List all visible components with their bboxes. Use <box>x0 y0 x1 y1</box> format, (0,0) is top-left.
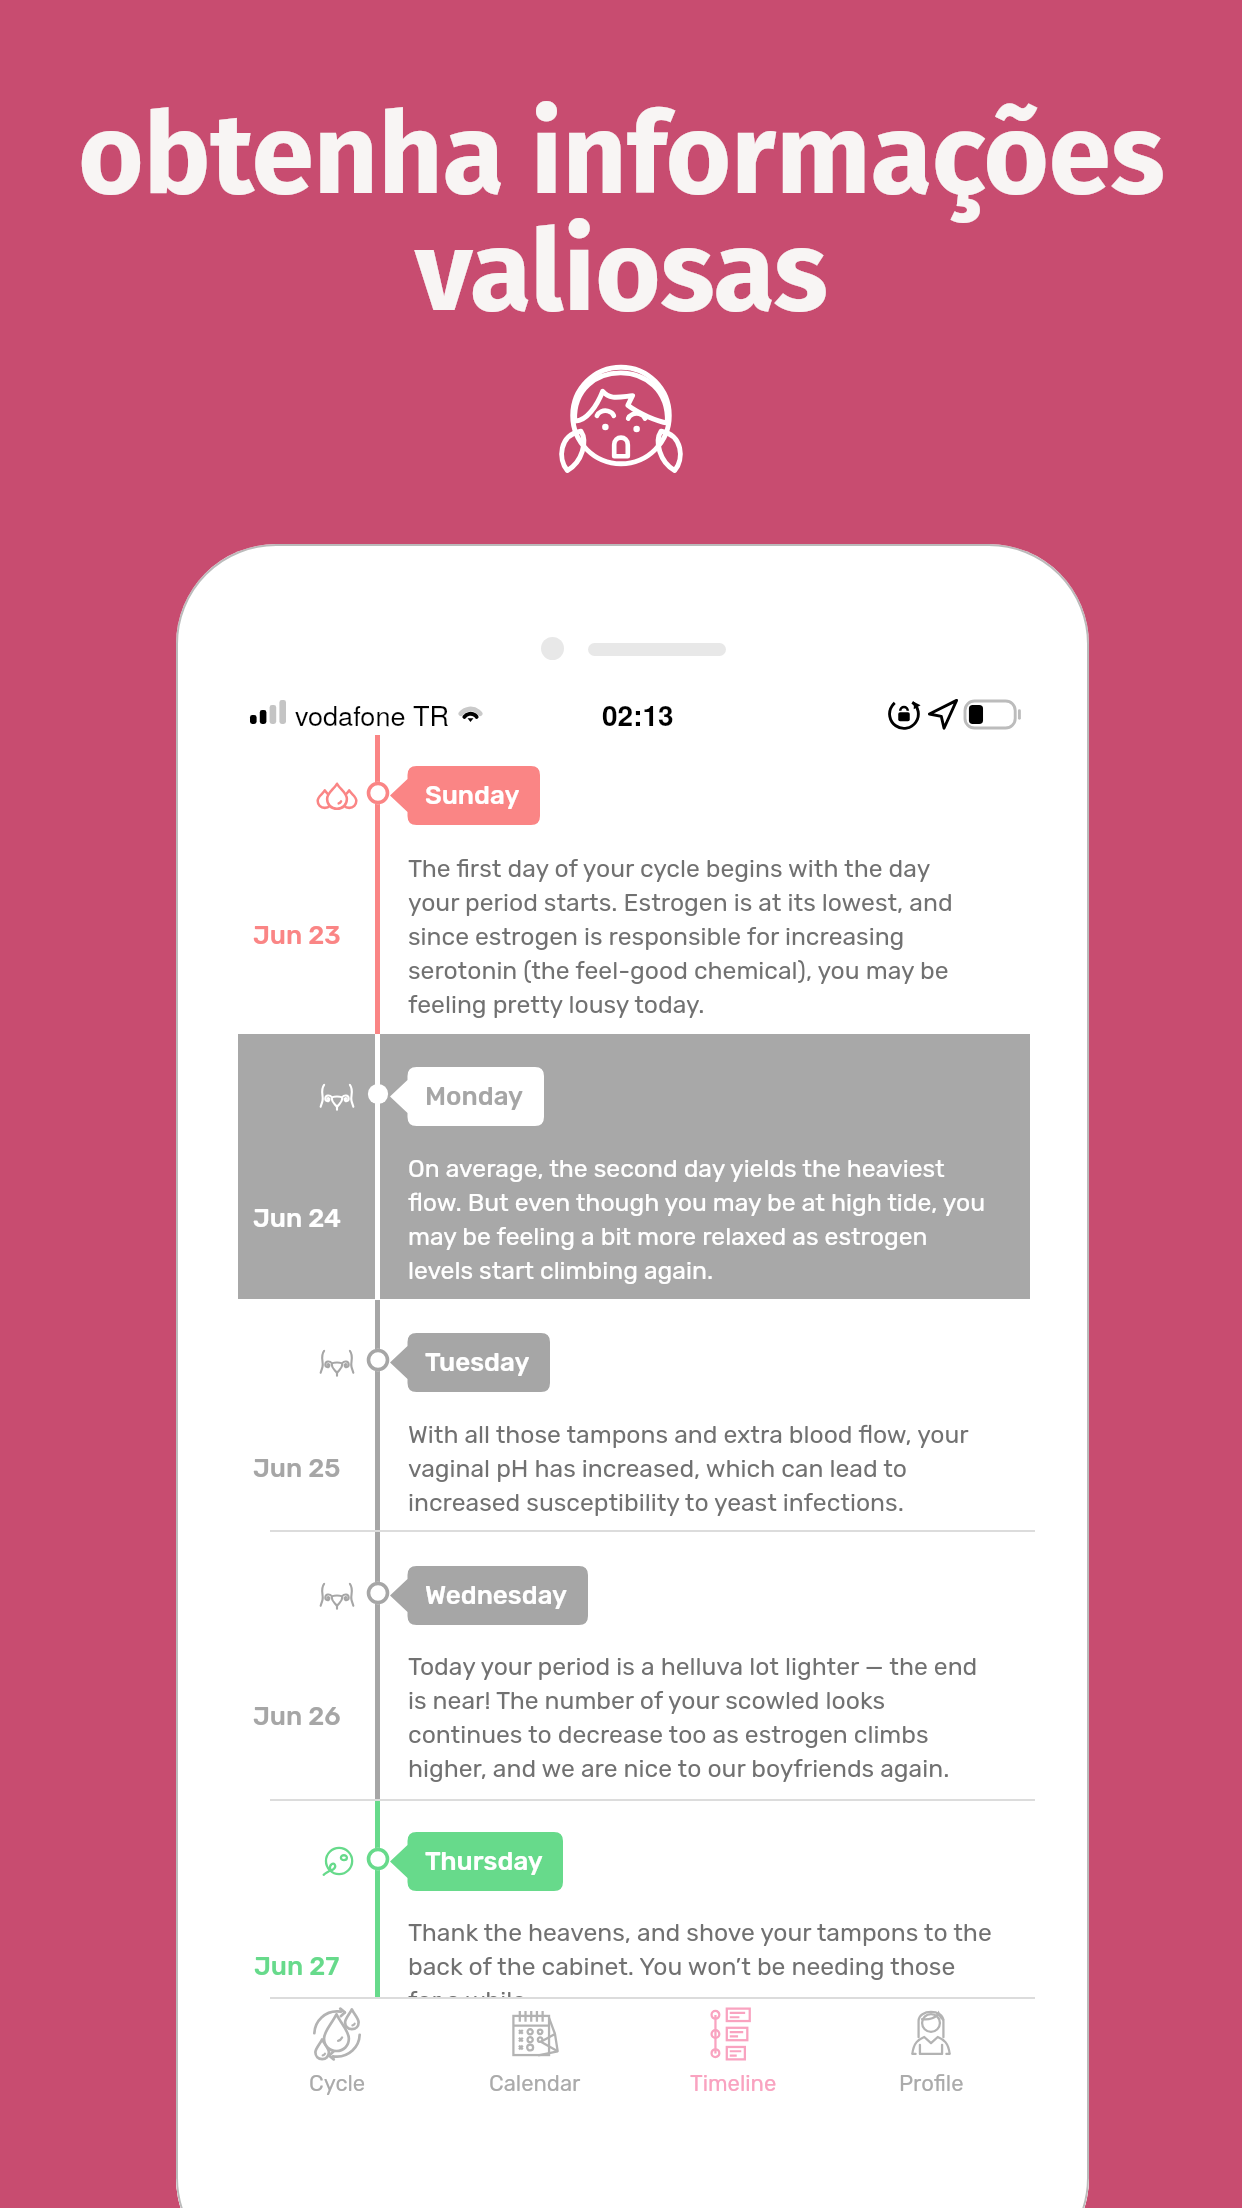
button[interactable]: Sunday <box>176 735 1089 1034</box>
button[interactable]: Tuesday <box>390 1333 550 1392</box>
staticText: vodafone TR <box>295 695 449 734</box>
staticText: The first day of your cycle begins with … <box>408 854 953 1019</box>
button[interactable]: Thursday <box>390 1832 563 1891</box>
staticText: Monday <box>425 1081 524 1112</box>
staticText: Profile <box>899 2070 964 2096</box>
button[interactable]: Profile <box>832 2007 1030 2117</box>
staticText: Calendar <box>489 2070 581 2096</box>
button[interactable]: Wednesday <box>176 1532 1089 1799</box>
staticText: Jun 24 <box>253 1203 342 1234</box>
staticText: Jun 26 <box>253 1701 341 1732</box>
button[interactable]: Sunday <box>390 766 540 825</box>
staticText: Cycle <box>309 2070 366 2096</box>
button[interactable]: Calendar <box>436 2007 634 2117</box>
other: Battery <box>964 700 1022 729</box>
button[interactable]: Timeline <box>634 2007 832 2117</box>
button[interactable]: Monday <box>390 1067 544 1126</box>
staticText: Jun 23 <box>253 920 341 951</box>
staticText: obtenha informações valiosas <box>78 88 1165 340</box>
staticText: Today your period is a helluva lot light… <box>408 1652 978 1783</box>
button[interactable]: Cycle <box>238 2007 436 2117</box>
other: Rotation lock <box>886 696 922 732</box>
staticText: 02:13 <box>602 694 674 734</box>
staticText: Sunday <box>425 780 520 811</box>
button[interactable]: Monday <box>238 1034 1030 1299</box>
staticText: Thank the heavens, and shove your tampon… <box>408 1918 992 1997</box>
staticText: Timeline <box>690 2070 777 2096</box>
staticText: Tuesday <box>425 1347 530 1378</box>
staticText: Wednesday <box>425 1580 568 1611</box>
staticText: Jun 27 <box>254 1951 340 1982</box>
staticText: Jun 25 <box>253 1453 341 1484</box>
staticText: Thursday <box>425 1846 543 1877</box>
button[interactable]: Tuesday <box>176 1300 1089 1530</box>
staticText: With all those tampons and extra blood f… <box>408 1420 969 1517</box>
other: Location <box>926 697 960 731</box>
button[interactable]: Thursday <box>176 1801 1089 1997</box>
staticText: On average, the second day yields the he… <box>408 1154 986 1285</box>
button[interactable]: Wednesday <box>390 1566 588 1625</box>
